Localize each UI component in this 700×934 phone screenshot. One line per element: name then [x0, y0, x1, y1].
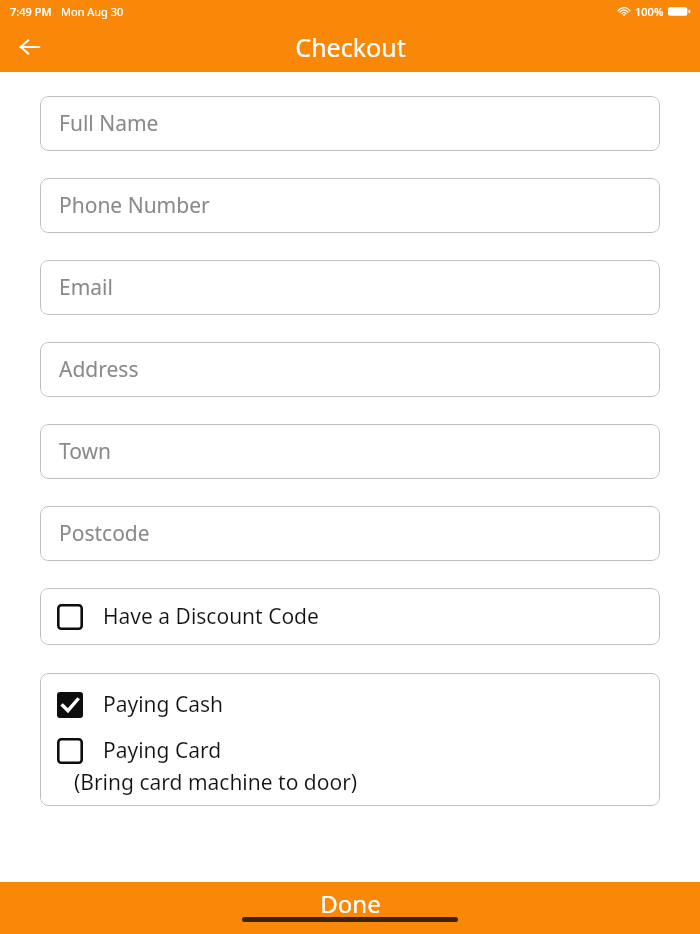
- button[interactable]: Paying Card: [40, 736, 660, 797]
- staticText: Address: [59, 355, 139, 384]
- staticText: Paying Cash: [103, 690, 224, 719]
- staticText: Postcode: [59, 519, 150, 548]
- staticText: Email: [59, 273, 113, 302]
- staticText: Full Name: [59, 109, 159, 138]
- button[interactable]: Full Name: [40, 96, 660, 151]
- button[interactable]: Town: [40, 424, 660, 479]
- button[interactable]: Email: [40, 260, 660, 315]
- button[interactable]: Phone Number: [40, 178, 660, 233]
- button[interactable]: Done: [0, 882, 700, 934]
- staticText: 7:49 PM: [10, 4, 52, 19]
- button[interactable]: Have a Discount Code: [40, 588, 660, 645]
- button[interactable]: Back: [8, 25, 52, 69]
- staticText: Checkout: [295, 30, 406, 64]
- staticText: Have a Discount Code: [103, 602, 319, 631]
- staticText: (Bring card machine to door): [74, 768, 358, 797]
- button[interactable]: Address: [40, 342, 660, 397]
- staticText: Paying Card: [103, 736, 222, 765]
- button[interactable]: Postcode: [40, 506, 660, 561]
- staticText: Phone Number: [59, 191, 210, 220]
- staticText: 100%: [635, 4, 664, 19]
- button[interactable]: Paying Cash: [40, 673, 660, 719]
- staticText: Mon Aug 30: [61, 4, 124, 19]
- staticText: Done: [320, 887, 381, 920]
- staticText: Town: [59, 437, 111, 466]
